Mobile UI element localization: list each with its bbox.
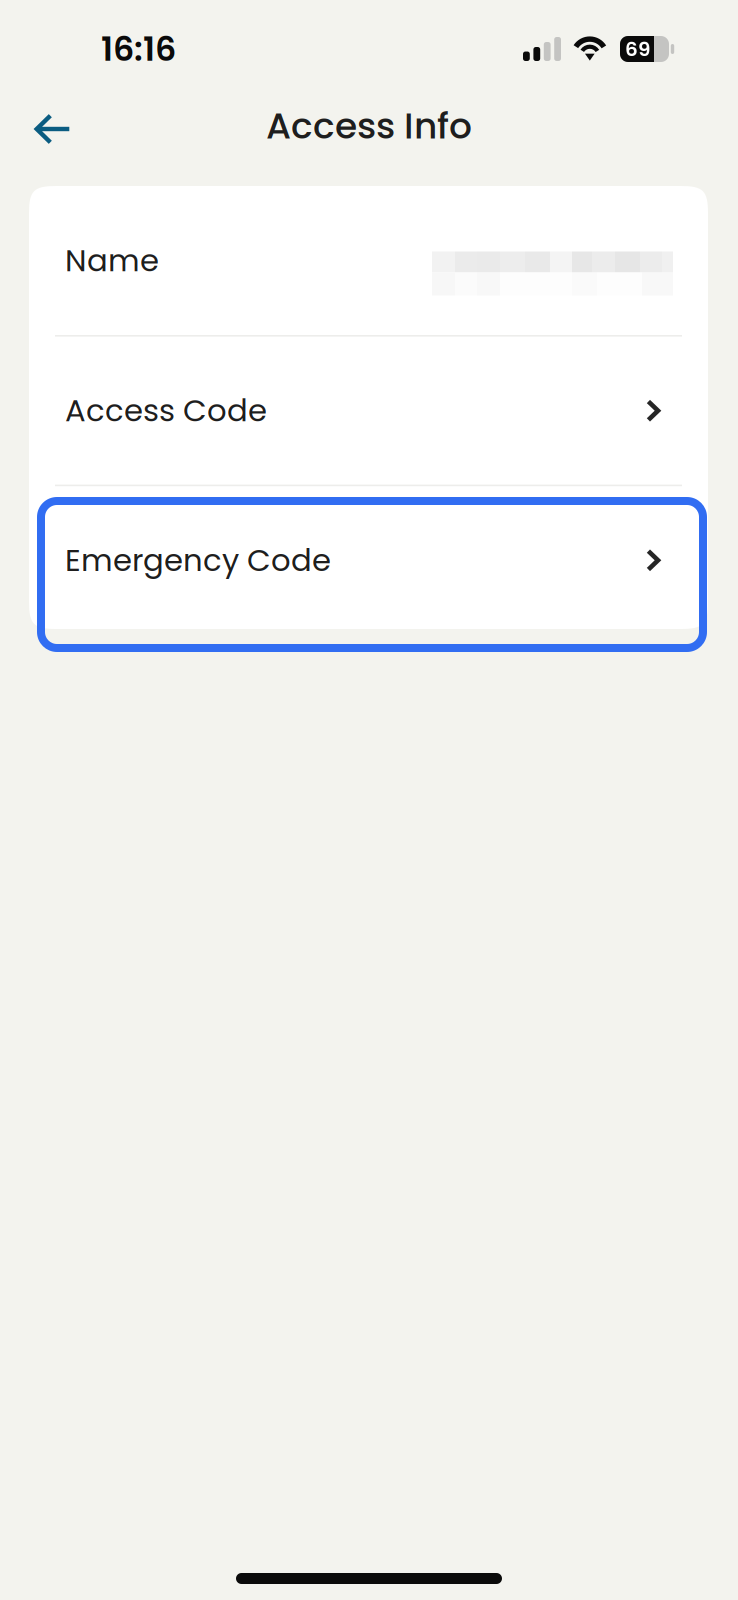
staticText: Emergency Code bbox=[65, 539, 331, 582]
button[interactable]: Access Code bbox=[29, 337, 708, 485]
button[interactable]: Emergency Code bbox=[29, 486, 708, 634]
staticText: 69 bbox=[625, 35, 651, 63]
button[interactable]: Back bbox=[14, 99, 92, 159]
staticText: Access Info bbox=[266, 101, 472, 151]
staticText: 16:16 bbox=[101, 26, 176, 72]
staticText: Name bbox=[65, 239, 159, 282]
staticText: Access Code bbox=[65, 389, 267, 432]
